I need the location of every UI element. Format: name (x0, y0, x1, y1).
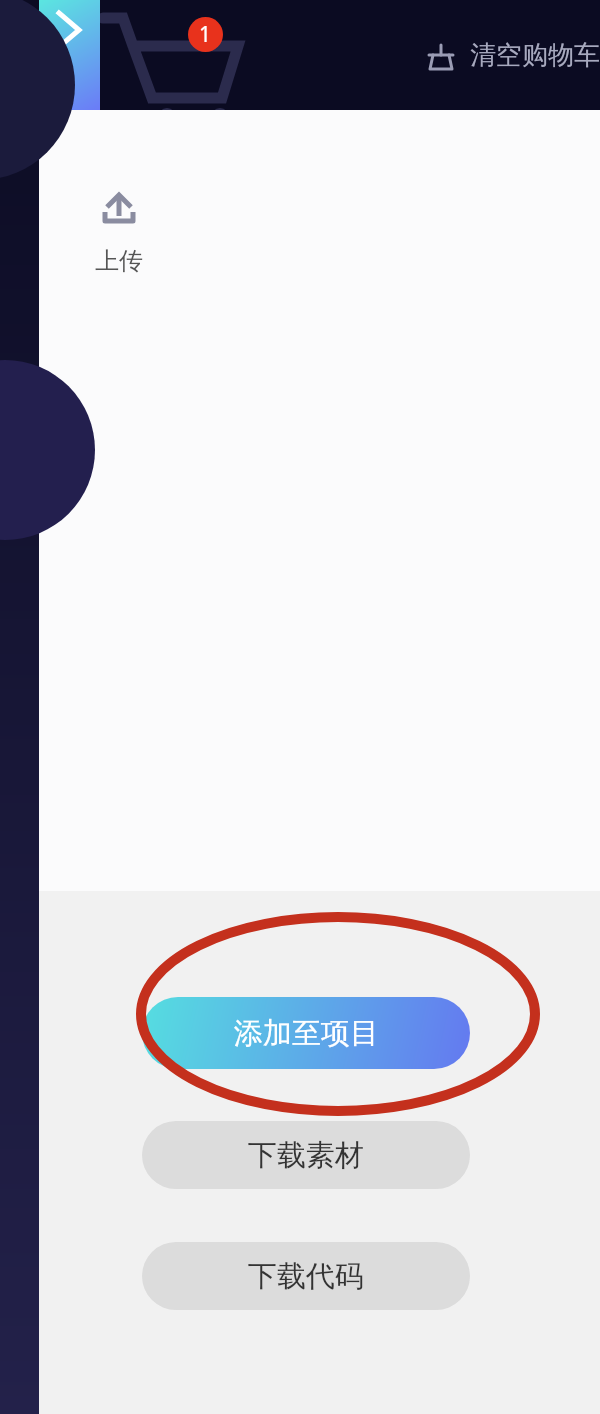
button[interactable]: Next (39, 0, 100, 110)
staticText: 下载素材 (248, 1137, 364, 1174)
staticText: 上传 (95, 246, 143, 276)
staticText: 添加至项目 (234, 1015, 379, 1052)
staticText: 下载代码 (248, 1258, 364, 1295)
button[interactable]: 上传 (79, 188, 159, 276)
button[interactable]: 清空购物车 (426, 39, 600, 72)
button[interactable]: 添加至项目 (142, 997, 470, 1069)
staticText: 清空购物车 (470, 39, 600, 72)
button[interactable]: 下载素材 (142, 1121, 470, 1189)
button[interactable]: 下载代码 (142, 1242, 470, 1310)
staticText: 1 (199, 20, 212, 49)
